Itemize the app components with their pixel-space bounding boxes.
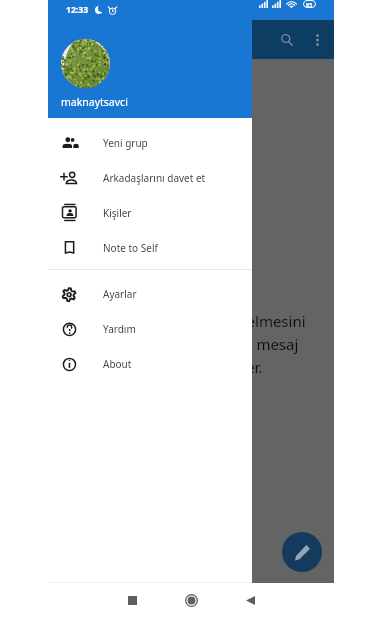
button[interactable]: Back bbox=[236, 586, 264, 614]
staticText: Kişiler bbox=[103, 206, 132, 220]
staticText: Note to Self bbox=[103, 241, 158, 255]
button[interactable]: Recents bbox=[118, 586, 146, 614]
staticText: maknaytsavci bbox=[61, 95, 128, 109]
staticText: 12:33 bbox=[66, 4, 89, 16]
staticText: Ayarlar bbox=[103, 287, 137, 301]
button[interactable]: About bbox=[48, 346, 252, 381]
button[interactable]: More options bbox=[302, 25, 332, 55]
staticText: Yeni grup bbox=[103, 136, 148, 150]
button[interactable]: New message bbox=[282, 532, 322, 572]
staticText: Mesajlarınızın buraya gelmesini sağlamak… bbox=[83, 311, 306, 377]
button[interactable]: Ayarlar bbox=[48, 276, 252, 311]
button[interactable]: Kişiler bbox=[48, 195, 252, 230]
button[interactable]: Arkadaşlarını davet et bbox=[48, 160, 252, 195]
button[interactable]: Yeni grup bbox=[48, 125, 252, 160]
button[interactable]: Home bbox=[177, 586, 205, 614]
staticText: 85 bbox=[306, 1, 313, 8]
staticText: About bbox=[103, 357, 132, 371]
button[interactable]: Search bbox=[272, 25, 302, 55]
button[interactable]: Note to Self bbox=[48, 230, 252, 265]
button[interactable]: Yardım bbox=[48, 311, 252, 346]
staticText: Yardım bbox=[103, 322, 136, 336]
staticText: Arkadaşlarını davet et bbox=[103, 171, 206, 185]
